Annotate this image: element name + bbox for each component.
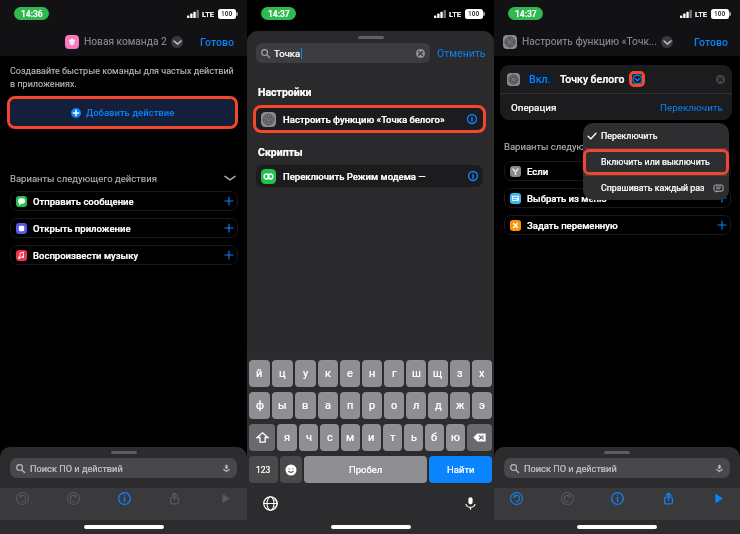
button[interactable]: Найти bbox=[429, 456, 492, 483]
button[interactable]: Redo bbox=[556, 488, 578, 510]
button[interactable]: Info bbox=[606, 488, 628, 510]
button[interactable]: я bbox=[277, 424, 297, 451]
button[interactable]: Задать переменную bbox=[510, 215, 726, 235]
button[interactable]: е bbox=[340, 360, 360, 387]
button[interactable]: э bbox=[472, 392, 492, 419]
button[interactable]: к bbox=[318, 360, 338, 387]
staticText: Настроить функцию «Точк... bbox=[522, 36, 657, 48]
button[interactable]: ф bbox=[249, 392, 270, 419]
button[interactable]: Отправить сообщение bbox=[16, 191, 233, 211]
button[interactable]: Undo bbox=[11, 488, 33, 510]
button[interactable]: м bbox=[341, 424, 360, 451]
staticText: д bbox=[435, 399, 442, 412]
button[interactable]: х bbox=[472, 360, 492, 387]
staticText: Отправить сообщение bbox=[33, 196, 225, 207]
button[interactable]: т bbox=[383, 424, 402, 451]
button[interactable]: ш bbox=[406, 360, 426, 387]
staticText: л bbox=[413, 399, 420, 412]
staticText: у bbox=[303, 367, 309, 380]
button[interactable]: Включить или выключить bbox=[583, 149, 729, 175]
button[interactable]: Shift bbox=[249, 424, 275, 451]
button[interactable]: Поиск ПО и действий bbox=[16, 458, 231, 478]
button[interactable]: Добавить действие bbox=[10, 99, 235, 126]
button[interactable]: Спрашивать каждый раз bbox=[601, 176, 723, 200]
button[interactable]: Отменить bbox=[437, 47, 486, 59]
button[interactable]: о bbox=[384, 392, 404, 419]
button[interactable]: д bbox=[428, 392, 448, 419]
staticText: и bbox=[368, 431, 375, 444]
button[interactable]: Настроить функцию «Точк... bbox=[503, 35, 694, 49]
button[interactable]: Run bbox=[707, 488, 729, 510]
button[interactable]: Варианты следующего действия bbox=[504, 141, 728, 153]
staticText: я bbox=[284, 431, 291, 444]
button[interactable]: Share bbox=[657, 488, 679, 510]
staticText: LTE bbox=[695, 10, 708, 19]
staticText: м bbox=[346, 431, 355, 444]
button[interactable]: Варианты следующего действия bbox=[10, 172, 235, 184]
button[interactable]: з bbox=[450, 360, 470, 387]
button[interactable]: у bbox=[295, 360, 316, 387]
button[interactable]: Переключить bbox=[588, 123, 721, 148]
staticText: Операция bbox=[511, 102, 557, 113]
button[interactable]: и bbox=[362, 424, 381, 451]
staticText: Поиск ПО и действий bbox=[524, 463, 715, 474]
button[interactable]: ю bbox=[446, 424, 465, 451]
button[interactable]: г bbox=[384, 360, 404, 387]
button[interactable]: ы bbox=[272, 392, 293, 419]
button[interactable]: Emoji bbox=[280, 456, 302, 483]
button[interactable]: ь bbox=[404, 424, 423, 451]
button[interactable]: Dictate bbox=[463, 496, 478, 511]
staticText: Скрипты bbox=[258, 146, 303, 158]
staticText: Настроить функцию «Точка белого» bbox=[283, 114, 463, 125]
button[interactable]: л bbox=[406, 392, 426, 419]
button[interactable]: ц bbox=[272, 360, 293, 387]
button[interactable]: н bbox=[362, 360, 382, 387]
button[interactable]: Backspace bbox=[467, 424, 492, 451]
staticText: р bbox=[369, 399, 376, 412]
button[interactable]: Выбрать из меню bbox=[510, 188, 726, 208]
staticText: LTE bbox=[449, 10, 462, 19]
button[interactable]: Share bbox=[163, 488, 185, 510]
staticText: Готово bbox=[694, 36, 728, 48]
staticText: Переключить bbox=[660, 102, 723, 113]
button[interactable]: Run bbox=[214, 488, 236, 510]
button[interactable]: Вкл. bbox=[507, 65, 725, 93]
staticText: е bbox=[347, 367, 353, 380]
button[interactable]: с bbox=[320, 424, 339, 451]
button[interactable]: й bbox=[249, 360, 270, 387]
button[interactable]: Готово bbox=[200, 36, 234, 48]
button[interactable]: Пробел bbox=[304, 456, 427, 483]
button[interactable]: Info bbox=[113, 488, 135, 510]
button[interactable]: Точка bbox=[261, 43, 425, 63]
staticText: щ bbox=[433, 367, 443, 380]
staticText: ш bbox=[412, 367, 421, 380]
button[interactable]: ж bbox=[450, 392, 470, 419]
staticText: Воспроизвести музыку bbox=[33, 250, 225, 261]
button[interactable]: Переключить Режим модема — bbox=[261, 165, 478, 187]
button[interactable]: ч bbox=[299, 424, 318, 451]
staticText: Добавить действие bbox=[86, 107, 175, 118]
staticText: б bbox=[431, 431, 438, 444]
button[interactable]: в bbox=[295, 392, 316, 419]
button[interactable]: 123 bbox=[249, 456, 278, 483]
button[interactable]: а bbox=[318, 392, 338, 419]
button[interactable]: Операция bbox=[511, 94, 723, 120]
button[interactable]: щ bbox=[428, 360, 448, 387]
button[interactable]: Undo bbox=[505, 488, 527, 510]
button[interactable]: Поиск ПО и действий bbox=[510, 458, 724, 478]
button[interactable]: Redo bbox=[62, 488, 84, 510]
button[interactable]: Change keyboard bbox=[263, 496, 278, 511]
button[interactable]: п bbox=[340, 392, 360, 419]
button[interactable]: Если bbox=[510, 161, 726, 181]
staticText: х bbox=[479, 367, 485, 380]
staticText: 100 bbox=[468, 10, 480, 18]
button[interactable]: Открыть приложение bbox=[16, 218, 233, 238]
button[interactable]: б bbox=[425, 424, 444, 451]
button[interactable]: Воспроизвести музыку bbox=[16, 245, 233, 265]
button[interactable]: Настроить функцию «Точка белого» bbox=[256, 108, 483, 130]
button[interactable]: Готово bbox=[694, 36, 728, 48]
button[interactable]: Новая команда 2 bbox=[65, 35, 183, 49]
staticText: Создавайте быстрые команды для частых де… bbox=[10, 66, 234, 89]
button[interactable]: р bbox=[362, 392, 382, 419]
staticText: Открыть приложение bbox=[33, 223, 225, 234]
